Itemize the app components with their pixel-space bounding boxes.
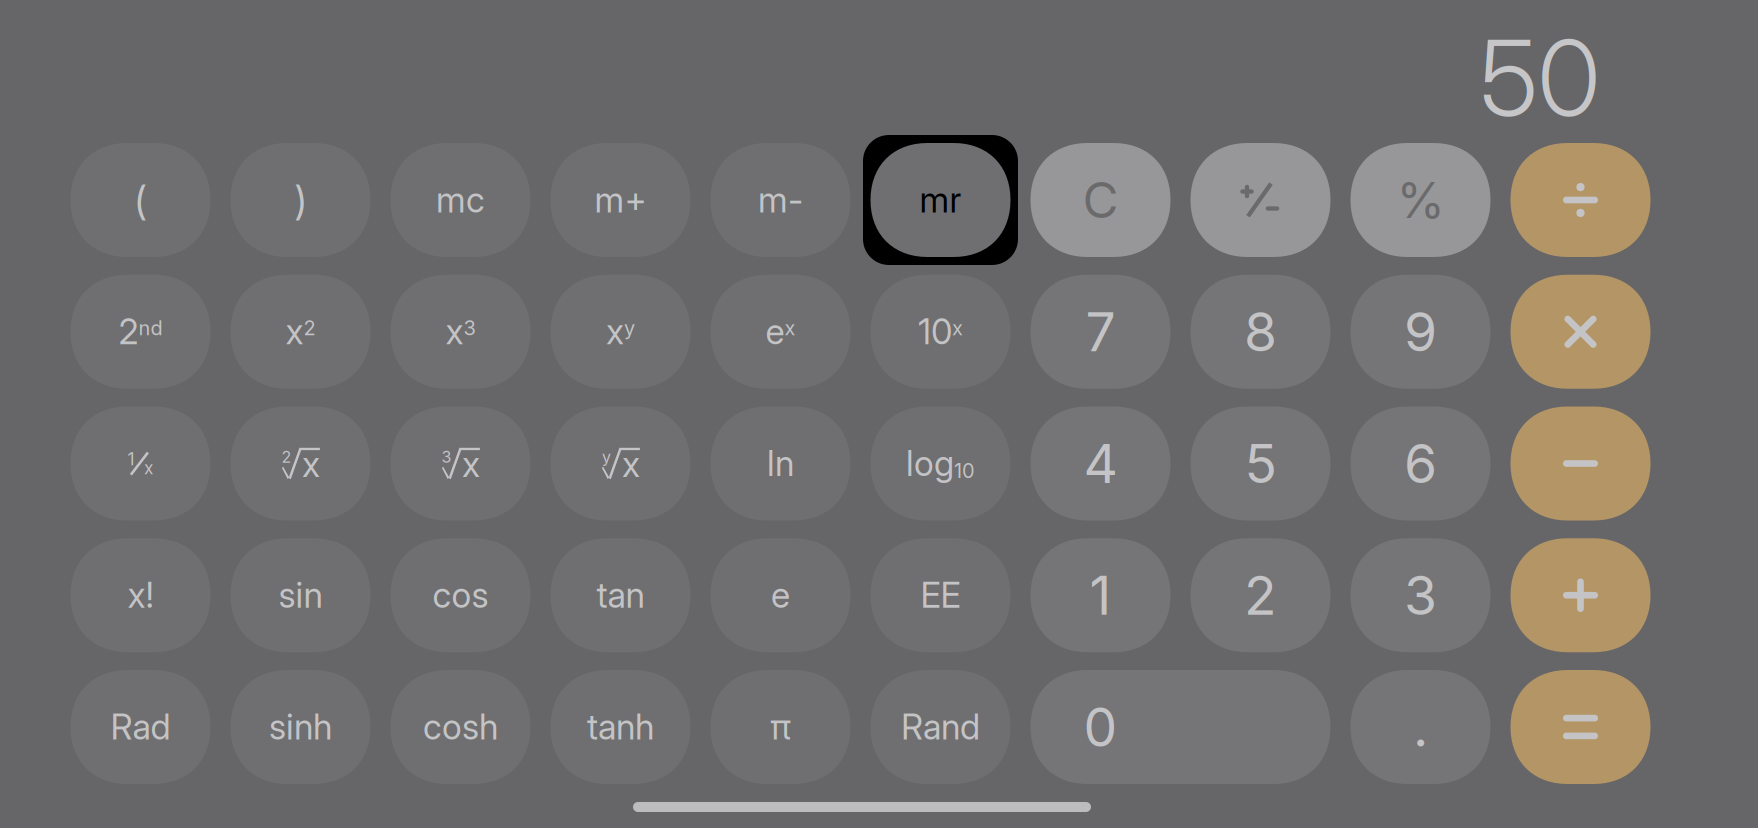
staticText: 6 <box>1404 431 1437 496</box>
button[interactable]: sin <box>230 538 370 652</box>
button[interactable]: x squared <box>230 275 370 389</box>
staticText: 3 <box>1404 563 1437 627</box>
button[interactable]: e to the x <box>710 275 850 389</box>
button[interactable]: Plus <box>1510 538 1650 652</box>
button[interactable]: EE <box>870 538 1010 652</box>
button[interactable]: mr <box>863 135 1018 265</box>
staticText: π <box>770 706 791 748</box>
button[interactable]: cosh <box>390 670 530 784</box>
staticText: tan <box>596 574 644 616</box>
staticText: 2 <box>281 447 291 467</box>
button[interactable]: Second <box>70 275 210 389</box>
button[interactable]: Equals <box>1510 670 1650 784</box>
staticText: tanh <box>587 706 654 748</box>
button[interactable]: 8 <box>1190 275 1330 389</box>
button[interactable]: ln <box>710 406 850 520</box>
button[interactable]: 9 <box>1350 275 1490 389</box>
staticText: mc <box>436 179 485 221</box>
button[interactable]: 2 <box>1190 538 1330 652</box>
staticText: m+ <box>594 179 646 221</box>
button[interactable]: tanh <box>550 670 690 784</box>
staticText: ln <box>767 442 794 484</box>
button[interactable]: Plus minus <box>1190 143 1330 257</box>
staticText: . <box>1413 695 1428 759</box>
button[interactable]: e <box>710 538 850 652</box>
staticText: 5 <box>1244 431 1276 496</box>
staticText: 7 <box>1085 299 1115 364</box>
staticText: 8 <box>1244 299 1277 364</box>
staticText: cos <box>432 574 488 616</box>
staticText: EE <box>920 574 960 616</box>
button[interactable]: 6 <box>1350 406 1490 520</box>
staticText: x <box>622 443 640 485</box>
button[interactable]: ) <box>230 143 370 257</box>
staticText: x2 <box>285 311 315 352</box>
button[interactable]: y-th root <box>550 406 690 520</box>
staticText: C <box>1082 170 1118 230</box>
staticText: 50 <box>1480 15 1600 141</box>
button[interactable]: 3 <box>1350 538 1490 652</box>
staticText: x <box>462 443 480 485</box>
button[interactable]: 5 <box>1190 406 1330 520</box>
button[interactable]: x to the y <box>550 275 690 389</box>
staticText: 3 <box>441 447 451 467</box>
button[interactable]: 7 <box>1030 275 1170 389</box>
staticText: 1 <box>1089 563 1111 627</box>
button[interactable]: 1 <box>1030 538 1170 652</box>
button[interactable]: x cubed <box>390 275 530 389</box>
staticText: 9 <box>1404 299 1437 364</box>
staticText: xy <box>606 311 635 352</box>
staticText: ex <box>765 311 795 352</box>
staticText: x! <box>127 574 153 616</box>
staticText: 2 <box>1244 563 1277 627</box>
button[interactable]: mc <box>390 143 530 257</box>
button[interactable]: Square root <box>230 406 370 520</box>
button[interactable]: Zero <box>1030 670 1330 784</box>
button[interactable]: % <box>1350 143 1490 257</box>
button[interactable]: cos <box>390 538 530 652</box>
button[interactable]: sinh <box>230 670 370 784</box>
staticText: Rad <box>110 706 170 748</box>
button[interactable]: m+ <box>550 143 690 257</box>
button[interactable]: m- <box>710 143 850 257</box>
button[interactable]: x! <box>70 538 210 652</box>
staticText: e <box>771 574 790 616</box>
staticText: 1 <box>127 448 134 469</box>
button[interactable]: Cube root <box>390 406 530 520</box>
staticText: sinh <box>269 706 332 748</box>
staticText: log10 <box>906 443 975 484</box>
staticText: 10x <box>918 311 963 352</box>
staticText: % <box>1396 170 1444 230</box>
staticText: Rand <box>901 706 980 748</box>
staticText: 0 <box>1083 695 1117 759</box>
staticText: ) <box>294 176 306 224</box>
staticText: y <box>602 447 611 467</box>
button[interactable]: π <box>710 670 850 784</box>
button[interactable]: Rand <box>870 670 1010 784</box>
staticText: ( <box>134 176 146 224</box>
button[interactable]: tan <box>550 538 690 652</box>
button[interactable]: Multiply <box>1510 275 1650 389</box>
button[interactable]: ( <box>70 143 210 257</box>
staticText: 2nd <box>118 311 162 352</box>
button[interactable]: 4 <box>1030 406 1170 520</box>
staticText: 4 <box>1083 431 1117 496</box>
staticText: x <box>144 457 153 478</box>
staticText: cosh <box>423 706 498 748</box>
button[interactable]: Divide <box>1510 143 1650 257</box>
button[interactable]: Rad <box>70 670 210 784</box>
staticText: sin <box>278 574 322 616</box>
button[interactable]: C <box>1030 143 1170 257</box>
button[interactable]: ten to the x <box>870 275 1010 389</box>
button[interactable]: log base ten <box>870 406 1010 520</box>
button[interactable]: One over x <box>70 406 210 520</box>
staticText: x3 <box>445 311 475 352</box>
button[interactable]: Minus <box>1510 406 1650 520</box>
staticText: x <box>302 443 320 485</box>
staticText: m- <box>758 179 803 221</box>
staticText: mr <box>919 179 961 221</box>
button[interactable]: . <box>1350 670 1490 784</box>
